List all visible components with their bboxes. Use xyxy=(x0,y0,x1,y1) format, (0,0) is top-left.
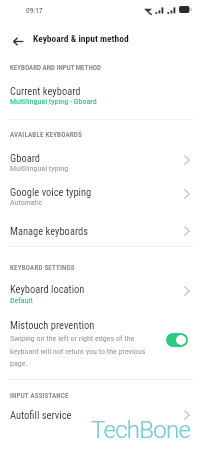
button[interactable]: Mistouch prevention xyxy=(0,314,202,374)
staticText: 09:17 xyxy=(26,6,43,15)
staticText: KEYBOARD SETTINGS xyxy=(10,264,75,272)
staticText: KEYBOARD AND INPUT METHOD xyxy=(10,64,101,72)
staticText: Current keyboard xyxy=(10,85,81,97)
staticText: Mistouch prevention xyxy=(10,319,95,331)
staticText: Multilingual typing xyxy=(10,164,69,173)
staticText: Automatic xyxy=(10,198,43,207)
button[interactable]: Google voice typing xyxy=(0,181,202,214)
staticText: Gboard xyxy=(10,152,40,164)
button[interactable] xyxy=(166,333,188,347)
button[interactable]: Current keyboard xyxy=(0,80,202,113)
button[interactable]: Gboard xyxy=(0,147,202,180)
staticText: Autofill service xyxy=(10,409,72,421)
button[interactable]: Manage keyboards xyxy=(0,218,202,244)
staticText: Multilingual typing - Gboard xyxy=(10,97,97,106)
staticText: Keyboard location xyxy=(10,283,85,295)
button[interactable]: Keyboard location xyxy=(0,278,202,310)
staticText: TechBone xyxy=(91,416,191,444)
staticText: INPUT ASSISTANCE xyxy=(10,392,69,400)
button[interactable] xyxy=(6,30,34,52)
staticText: AVAILABLE KEYBOARDS xyxy=(10,131,82,139)
staticText: Google voice typing xyxy=(10,186,92,198)
button[interactable]: Autofill service xyxy=(0,405,202,431)
staticText: Manage keyboards xyxy=(10,225,89,237)
staticText: Swiping on the left or right edges of th… xyxy=(10,334,160,367)
staticText: Default xyxy=(10,296,33,305)
staticText: Keyboard & input method xyxy=(33,33,129,44)
